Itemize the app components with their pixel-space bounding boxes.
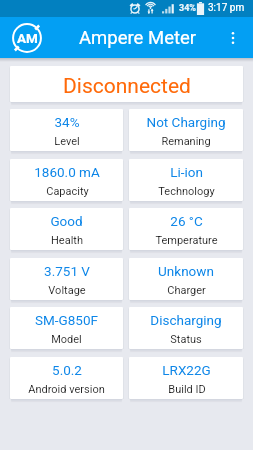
staticText: Level <box>54 135 80 148</box>
button[interactable]: 5.0.2 <box>10 357 123 402</box>
staticText: Technology <box>158 185 215 198</box>
staticText: Health <box>51 234 83 247</box>
staticText: Status <box>170 333 202 346</box>
staticText: 3.751 V <box>44 263 90 279</box>
staticText: Unknown <box>158 263 214 279</box>
staticText: Android version <box>28 383 105 396</box>
button[interactable]: Discharging <box>129 307 243 352</box>
staticText: Disconnected <box>63 74 191 99</box>
button[interactable]: Not Charging <box>129 109 243 154</box>
staticText: Li-ion <box>170 164 203 180</box>
staticText: LRX22G <box>162 362 211 378</box>
button[interactable]: 3.751 V <box>10 258 123 303</box>
staticText: Voltage <box>48 284 86 297</box>
staticText: 5.0.2 <box>52 362 82 378</box>
staticText: 3:17 pm <box>208 2 245 14</box>
staticText: 1860.0 mA <box>34 164 100 180</box>
staticText: 34% <box>179 3 196 14</box>
staticText: 26 °C <box>170 213 203 229</box>
staticText: Build ID <box>168 383 206 396</box>
staticText: Temperature <box>155 234 218 247</box>
staticText: Not Charging <box>146 114 226 130</box>
button[interactable]: Ampere Meter logo <box>11 22 43 54</box>
staticText: Ampere Meter <box>79 27 197 49</box>
staticText: AM <box>17 30 38 46</box>
staticText: Good <box>50 213 83 229</box>
staticText: Model <box>51 333 82 346</box>
button[interactable]: 1860.0 mA <box>10 159 123 204</box>
staticText: Discharging <box>150 312 222 328</box>
staticText: Capacity <box>46 185 89 198</box>
staticText: 34% <box>54 114 80 130</box>
button[interactable]: Unknown <box>129 258 243 303</box>
staticText: Remaning <box>161 135 211 148</box>
button[interactable]: SM-G850F <box>10 307 123 352</box>
button[interactable]: LRX22G <box>129 357 243 402</box>
button[interactable]: 26 °C <box>129 208 243 253</box>
staticText: SM-G850F <box>35 312 98 328</box>
button[interactable]: Li-ion <box>129 159 243 204</box>
button[interactable]: 34% <box>10 109 123 154</box>
button[interactable]: Disconnected <box>10 66 243 105</box>
button[interactable]: More options <box>220 25 246 51</box>
staticText: Charger <box>167 284 206 297</box>
button[interactable]: Good <box>10 208 123 253</box>
